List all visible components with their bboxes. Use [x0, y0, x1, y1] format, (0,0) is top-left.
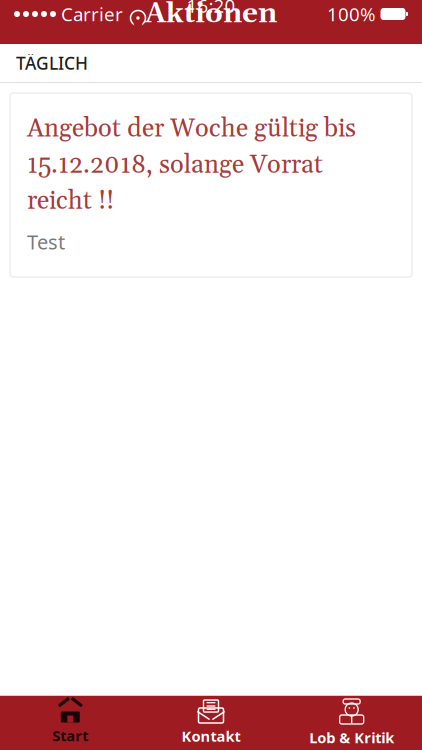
staticText: Angebot der Woche gültig bis 15.12.2018,… — [27, 113, 356, 217]
staticText: Carrier — [61, 2, 123, 26]
button[interactable]: Lob & Kritik — [281, 696, 422, 750]
staticText: Test — [27, 228, 65, 255]
staticText: Lob & Kritik — [309, 727, 394, 747]
staticText: Kontakt — [181, 726, 240, 746]
staticText: Aktionen — [145, 0, 277, 32]
button[interactable]: Angebot der Woche gültig bis 15.12.2018,… — [10, 93, 412, 277]
staticText: 16:20 — [186, 0, 235, 18]
staticText: Start — [52, 725, 88, 745]
staticText: 100% — [327, 2, 376, 26]
button[interactable]: Start — [0, 696, 141, 750]
staticText: TÄGLICH — [16, 51, 88, 75]
button[interactable]: Kontakt — [141, 696, 281, 750]
